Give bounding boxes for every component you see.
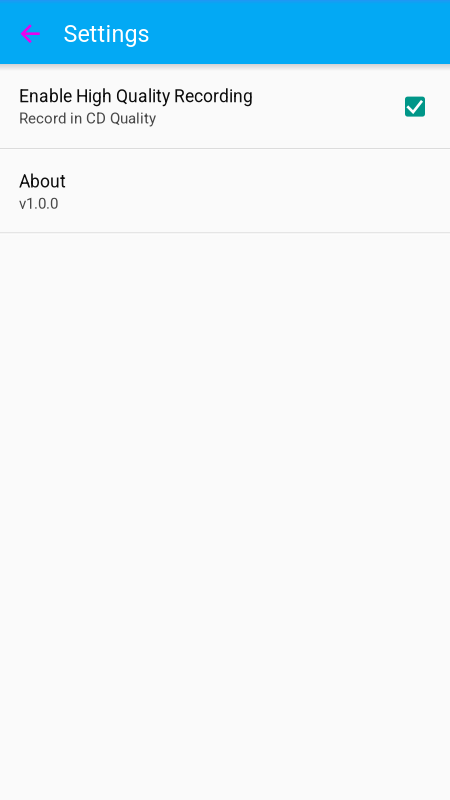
- staticText: v1.0.0: [19, 195, 58, 212]
- staticText: Enable High Quality Recording: [19, 86, 253, 106]
- button[interactable]: Enable High Quality Recording: [0, 64, 450, 150]
- button[interactable]: About: [0, 150, 450, 234]
- button[interactable]: Back: [8, 0, 53, 64]
- staticText: Record in CD Quality: [19, 110, 156, 127]
- staticText: Settings: [63, 20, 149, 48]
- staticText: About: [19, 171, 66, 192]
